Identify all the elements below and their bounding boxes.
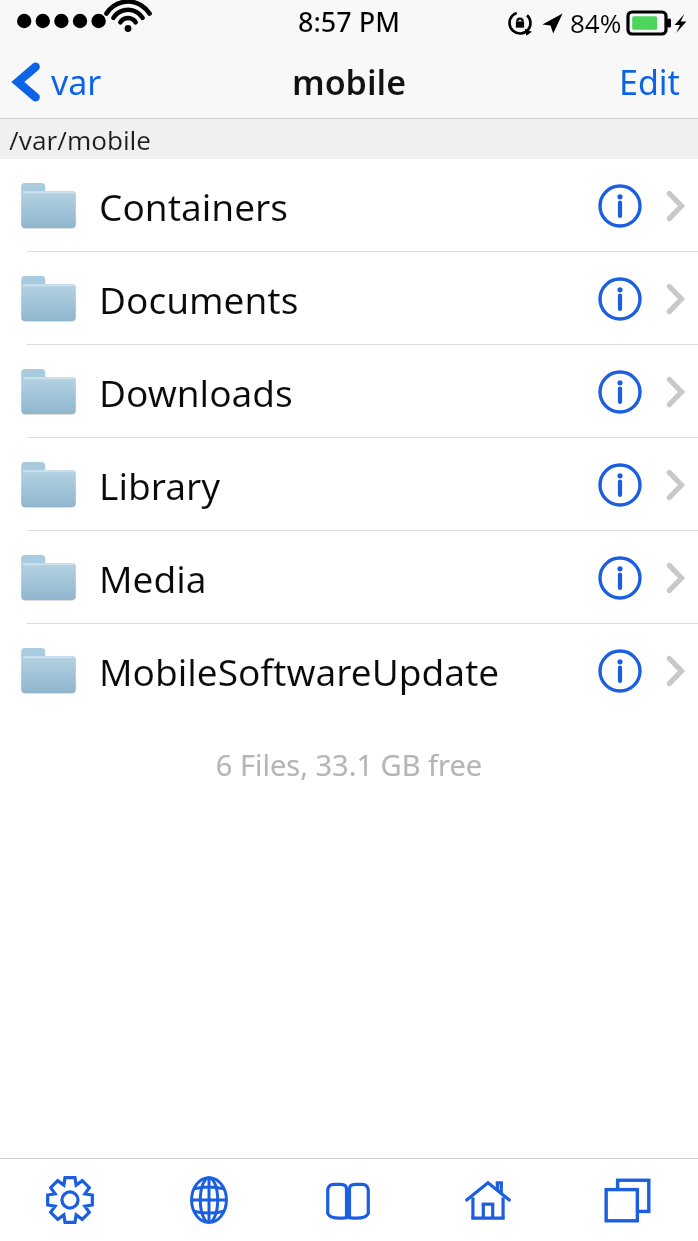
button[interactable]: Containers: [0, 159, 698, 252]
button[interactable]: Documents: [0, 252, 698, 345]
button[interactable]: Edit: [601, 49, 698, 115]
staticText: 8:57 PM: [298, 3, 400, 40]
button[interactable]: Browser: [139, 1159, 278, 1241]
staticText: 6 Files, 33.1 GB free: [0, 745, 698, 784]
staticText: 84%: [570, 5, 622, 40]
button[interactable]: Downloads: [0, 345, 698, 438]
staticText: var: [51, 59, 102, 105]
button[interactable]: MobileSoftwareUpdate: [0, 624, 698, 717]
staticText: mobile: [292, 59, 407, 105]
staticText: Downloads: [99, 367, 588, 417]
button[interactable]: Tabs: [558, 1159, 698, 1241]
staticText: Documents: [99, 274, 588, 324]
button[interactable]: Media: [0, 531, 698, 624]
button[interactable]: Settings: [0, 1159, 139, 1241]
button[interactable]: Info about MobileSoftwareUpdate: [588, 624, 652, 717]
button[interactable]: Info about Containers: [588, 159, 652, 252]
button[interactable]: Home: [418, 1159, 558, 1241]
button[interactable]: Info about Library: [588, 438, 652, 531]
button[interactable]: Library: [0, 438, 698, 531]
staticText: Edit: [619, 59, 680, 105]
button[interactable]: Bookmarks: [278, 1159, 418, 1241]
staticText: Media: [99, 553, 588, 603]
staticText: /var/mobile: [9, 122, 151, 157]
staticText: Library: [99, 460, 588, 510]
button[interactable]: Info about Media: [588, 531, 652, 624]
button[interactable]: Info about Downloads: [588, 345, 652, 438]
staticText: Containers: [99, 181, 588, 231]
button[interactable]: var: [0, 51, 120, 113]
staticText: MobileSoftwareUpdate: [99, 646, 588, 696]
button[interactable]: Info about Documents: [588, 252, 652, 345]
